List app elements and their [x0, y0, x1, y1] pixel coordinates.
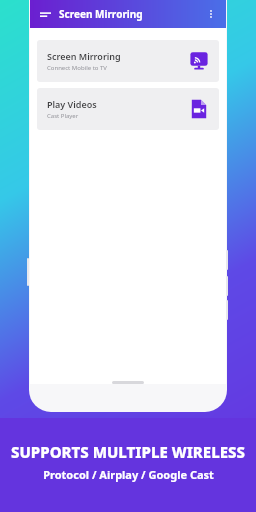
button[interactable]: More options [203, 6, 219, 22]
button[interactable]: Play Videos [37, 88, 219, 130]
staticText: Screen Mirroring [47, 50, 121, 62]
button[interactable]: Screen Mirroring [37, 40, 219, 82]
staticText: Connect Mobile to TV [47, 64, 107, 72]
staticText: Cast Player [47, 112, 79, 120]
staticText: Screen Mirroring [59, 7, 143, 21]
staticText: SUPPORTS MULTIPLE WIRELESS [11, 442, 245, 462]
staticText: Play Videos [47, 98, 97, 110]
staticText: Protocol / Airplay / Google Cast [43, 467, 214, 482]
button[interactable]: Menu [37, 6, 53, 22]
